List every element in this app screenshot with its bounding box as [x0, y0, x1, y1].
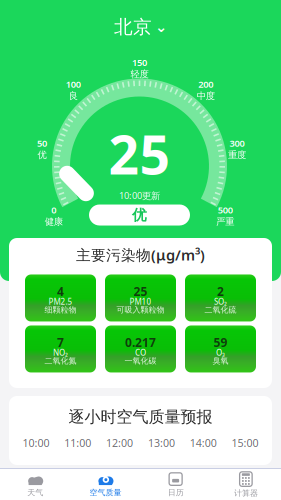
- staticText: 优: [132, 206, 147, 224]
- staticText: 150: [132, 56, 147, 68]
- staticText: 25: [133, 283, 147, 299]
- button[interactable]: 0.217: [105, 325, 176, 372]
- staticText: 500: [218, 204, 233, 216]
- button[interactable]: 空气质量: [70, 469, 140, 500]
- staticText: 59: [213, 334, 227, 350]
- staticText: 北京: [114, 15, 152, 38]
- staticText: 4: [57, 283, 64, 299]
- staticText: 10:00: [22, 436, 49, 450]
- staticText: 二氧化硫: [204, 305, 236, 315]
- staticText: 优: [37, 149, 46, 161]
- staticText: 12:00: [106, 436, 133, 450]
- button[interactable]: 日历: [140, 469, 211, 500]
- staticText: 二氧化氮: [44, 356, 76, 366]
- staticText: 300: [229, 137, 244, 149]
- staticText: 细颗粒物: [44, 305, 76, 315]
- staticText: 日历: [168, 488, 184, 497]
- staticText: 中度: [197, 90, 215, 102]
- staticText: O₃: [216, 347, 225, 358]
- staticText: 逐小时空气质量预报: [68, 407, 212, 427]
- staticText: 50: [37, 137, 47, 149]
- button[interactable]: 计算器: [211, 469, 281, 500]
- button[interactable]: 2: [185, 274, 256, 321]
- staticText: 2: [217, 283, 224, 299]
- staticText: 14:00: [190, 436, 217, 450]
- staticText: 一氧化碳: [124, 356, 156, 366]
- staticText: 空气质量: [89, 488, 121, 497]
- staticText: 25: [108, 118, 170, 189]
- staticText: 主要污染物(μg/m³): [76, 245, 205, 264]
- staticText: CO: [135, 347, 146, 358]
- staticText: 0: [51, 204, 56, 216]
- staticText: 健康: [45, 216, 63, 227]
- staticText: 13:00: [148, 436, 175, 450]
- staticText: 0.217: [125, 334, 156, 350]
- staticText: PM10: [129, 296, 151, 307]
- staticText: 重度: [228, 149, 246, 161]
- staticText: 天气: [27, 488, 43, 497]
- staticText: SO₂: [214, 296, 227, 307]
- staticText: PM2.5: [48, 296, 72, 307]
- staticText: 严重: [216, 216, 234, 227]
- staticText: 10:00更新: [119, 189, 160, 202]
- staticText: 15:00: [232, 436, 259, 450]
- staticText: ⌄: [155, 19, 167, 35]
- button[interactable]: 天气: [0, 469, 70, 500]
- button[interactable]: 25: [105, 274, 176, 321]
- staticText: 200: [198, 78, 213, 90]
- staticText: 7: [57, 334, 64, 350]
- staticText: 可吸入颗粒物: [116, 305, 164, 315]
- button[interactable]: 59: [185, 325, 256, 372]
- staticText: 计算器: [234, 488, 258, 498]
- staticText: NO₂: [53, 347, 68, 358]
- staticText: 良: [69, 90, 78, 102]
- staticText: 轻度: [130, 68, 148, 80]
- staticText: 100: [66, 78, 81, 90]
- staticText: 臭氧: [212, 356, 228, 366]
- button[interactable]: 4: [25, 274, 96, 321]
- button[interactable]: 北京: [114, 15, 167, 38]
- button[interactable]: 7: [25, 325, 96, 372]
- staticText: 11:00: [64, 436, 91, 450]
